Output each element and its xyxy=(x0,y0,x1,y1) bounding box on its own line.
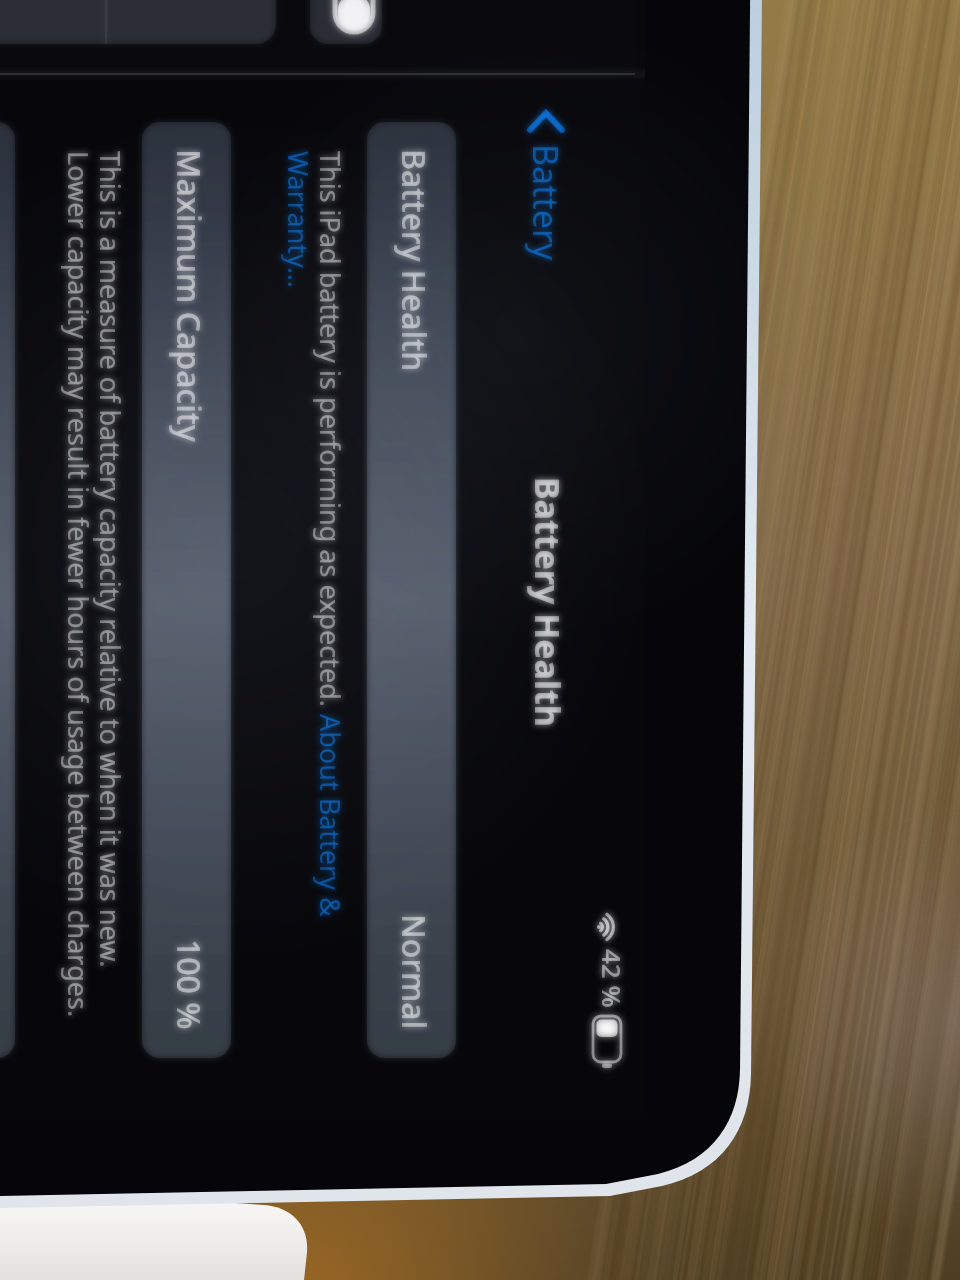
button[interactable]: Maximum Capacity xyxy=(142,122,231,1058)
staticText: Maximum Capacity xyxy=(167,149,211,442)
staticText: 100 % xyxy=(167,939,211,1030)
staticText: Battery Health xyxy=(525,477,571,727)
staticText: This iPad battery is performing as expec… xyxy=(280,151,349,917)
staticText: Battery Health xyxy=(392,149,436,372)
button[interactable]: Battery Health xyxy=(367,122,456,1058)
button[interactable]: Charging xyxy=(0,122,15,1058)
button[interactable]: Maximum Capacity xyxy=(142,122,231,1058)
staticText: Normal xyxy=(392,914,436,1030)
button[interactable]: Charging xyxy=(0,122,15,1058)
staticText: Normal xyxy=(392,914,436,1030)
staticText: Battery xyxy=(523,144,569,261)
button[interactable] xyxy=(310,0,382,44)
staticText: Maximum Capacity xyxy=(167,149,211,442)
staticText: 100 % xyxy=(167,939,211,1030)
button[interactable]: Toggle xyxy=(335,0,373,32)
staticText: Battery Health xyxy=(392,149,436,372)
button[interactable]: Battery xyxy=(523,109,569,261)
staticText: This is a measure of battery capacity re… xyxy=(60,151,129,1018)
button[interactable]: Toggle xyxy=(335,0,373,32)
button[interactable] xyxy=(0,0,276,44)
staticText: Battery xyxy=(523,144,569,261)
button[interactable] xyxy=(0,0,276,44)
staticText: This is a measure of battery capacity re… xyxy=(60,151,129,1018)
staticText: This iPad battery is performing as expec… xyxy=(280,151,349,917)
staticText: 42 % xyxy=(595,949,630,1008)
button[interactable]: Battery xyxy=(523,109,569,261)
staticText: Battery Health xyxy=(525,477,571,727)
button[interactable] xyxy=(310,0,382,44)
button[interactable]: Battery Health xyxy=(367,122,456,1058)
staticText: 42 % xyxy=(595,949,630,1008)
